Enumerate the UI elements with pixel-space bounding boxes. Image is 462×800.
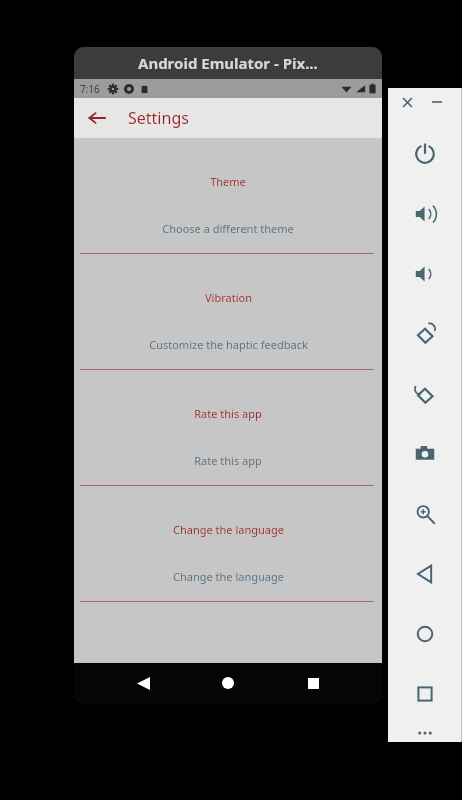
button[interactable]: Rotate right [396, 364, 454, 424]
button[interactable]: Take screenshot [396, 424, 454, 484]
button[interactable]: Back [126, 666, 160, 700]
staticText: Vibration [205, 290, 252, 305]
button[interactable]: Zoom [396, 484, 454, 544]
button[interactable]: Rotate left [396, 304, 454, 364]
staticText: 7:16 [80, 82, 100, 96]
button[interactable]: Theme [74, 138, 382, 254]
button[interactable]: Volume up [396, 184, 454, 244]
staticText: Settings [128, 107, 189, 129]
staticText: Android Emulator - Pix... [138, 53, 318, 73]
button[interactable]: Vibration [74, 254, 382, 370]
button[interactable]: More [396, 724, 454, 742]
button[interactable]: Overview [396, 664, 454, 724]
staticText: Rate this app [194, 406, 262, 421]
button[interactable]: Back [80, 101, 114, 135]
button[interactable]: Change the language [74, 486, 382, 602]
button[interactable]: Volume down [396, 244, 454, 304]
button[interactable]: Home [211, 666, 245, 700]
button[interactable]: Home [396, 604, 454, 664]
button[interactable]: Back [396, 544, 454, 604]
staticText: Change the language [173, 522, 284, 537]
staticText: Theme [210, 174, 246, 189]
button[interactable]: Close [396, 91, 418, 113]
staticText: Rate this app [194, 453, 262, 468]
button[interactable]: Power [396, 124, 454, 184]
staticText: Customize the haptic feedback [149, 337, 308, 352]
button[interactable]: Minimize [426, 91, 448, 113]
button[interactable]: Rate this app [74, 370, 382, 486]
staticText: Change the language [173, 569, 284, 584]
staticText: Choose a different theme [162, 221, 294, 236]
button[interactable]: Recent apps [296, 666, 330, 700]
